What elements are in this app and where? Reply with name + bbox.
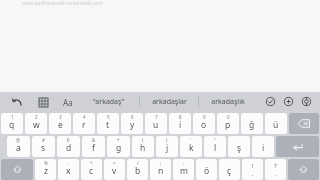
staticText: ( <box>142 137 144 143</box>
staticText: * <box>117 137 120 143</box>
staticText: 1 <box>11 114 14 120</box>
button[interactable]: Shift <box>1 159 33 180</box>
button[interactable]: " <box>204 136 226 157</box>
staticText: e <box>58 119 63 131</box>
staticText: l <box>214 142 217 154</box>
button[interactable]: ü <box>265 113 287 134</box>
button[interactable]: - <box>58 159 79 180</box>
staticText: 4 <box>83 114 86 120</box>
button[interactable]: 1 <box>1 113 23 134</box>
staticText: " <box>214 137 216 143</box>
staticText: j <box>166 142 169 154</box>
button[interactable]: # <box>32 136 55 157</box>
staticText: v <box>112 165 117 177</box>
button[interactable]: 8 <box>169 113 191 134</box>
button[interactable]: 5 <box>97 113 119 134</box>
staticText: 9 <box>203 114 206 120</box>
staticText: d <box>66 142 72 154</box>
button[interactable]: i <box>252 136 274 157</box>
button[interactable]: 4 <box>73 113 95 134</box>
staticText: i <box>262 142 265 154</box>
button[interactable]: + <box>81 159 102 180</box>
button[interactable]: Backspace <box>289 113 319 134</box>
button[interactable]: @ <box>7 136 30 157</box>
staticText: a <box>16 142 21 154</box>
button[interactable]: “arkadaş” <box>77 92 139 111</box>
staticText: www.kadinvekadin-arkadaslik.com <box>22 0 104 7</box>
button[interactable]: % <box>35 159 56 180</box>
staticText: 8 <box>179 114 182 120</box>
staticText: 6 <box>131 114 134 120</box>
button[interactable]: ç <box>219 159 240 180</box>
staticText: k <box>189 142 194 154</box>
button[interactable]: : <box>173 159 194 180</box>
staticText: g <box>116 142 122 154</box>
staticText: . <box>275 170 277 178</box>
button[interactable]: = <box>104 159 125 180</box>
staticText: 0 <box>227 114 230 120</box>
button[interactable]: * <box>107 136 130 157</box>
button[interactable]: Check <box>263 94 278 109</box>
staticText: - <box>68 160 70 166</box>
staticText: t <box>106 119 110 131</box>
button[interactable]: Return <box>276 136 319 157</box>
button[interactable]: ğ <box>241 113 263 134</box>
staticText: ₺ <box>67 137 70 143</box>
staticText: m <box>180 165 188 177</box>
button[interactable]: / <box>127 159 148 180</box>
staticText: & <box>92 137 96 143</box>
staticText: w <box>33 119 40 131</box>
staticText: @ <box>16 137 21 143</box>
button[interactable]: Table <box>35 94 51 110</box>
button[interactable]: ; <box>150 159 171 180</box>
staticText: b <box>135 165 141 177</box>
button[interactable]: 3 <box>49 113 71 134</box>
button[interactable]: Add <box>281 94 296 109</box>
button[interactable]: 0 <box>217 113 239 134</box>
staticText: = <box>113 160 116 166</box>
staticText: ü <box>273 119 279 131</box>
staticText: 7 <box>155 114 158 120</box>
button[interactable]: ş <box>228 136 250 157</box>
staticText: r <box>82 119 86 131</box>
staticText: ğ <box>249 119 255 131</box>
button[interactable]: Undo <box>9 94 25 110</box>
staticText: u <box>153 119 159 131</box>
staticText: Aa <box>63 97 73 108</box>
staticText: ) <box>166 137 168 143</box>
staticText: ' <box>190 137 192 143</box>
staticText: n <box>158 165 164 177</box>
staticText: # <box>42 137 45 143</box>
button[interactable]: ! <box>242 159 263 180</box>
button[interactable]: Settings <box>299 94 314 109</box>
button[interactable]: ( <box>132 136 154 157</box>
button[interactable]: ₺ <box>57 136 80 157</box>
staticText: i <box>179 119 182 131</box>
button[interactable]: 9 <box>193 113 215 134</box>
button[interactable]: ) <box>156 136 178 157</box>
staticText: o <box>201 119 207 131</box>
staticText: y <box>130 119 135 131</box>
staticText: ? <box>274 162 277 170</box>
button[interactable]: ' <box>180 136 202 157</box>
button[interactable]: Text format <box>59 93 77 111</box>
button[interactable]: arkadaşlık <box>199 92 257 111</box>
staticText: h <box>140 142 146 154</box>
button[interactable]: Shift <box>288 159 319 180</box>
button[interactable]: ö <box>196 159 217 180</box>
staticText: “arkadaş” <box>93 97 124 107</box>
button[interactable]: 2 <box>25 113 47 134</box>
button[interactable]: arkadaşlar <box>140 92 198 111</box>
staticText: z <box>44 165 48 177</box>
staticText: ç <box>227 165 232 177</box>
staticText: p <box>225 119 231 131</box>
button[interactable]: & <box>82 136 105 157</box>
staticText: : <box>183 160 185 166</box>
staticText: 3 <box>59 114 62 120</box>
staticText: ö <box>204 165 210 177</box>
staticText: x <box>66 165 71 177</box>
button[interactable]: ? <box>265 159 286 180</box>
staticText: % <box>44 160 48 166</box>
button[interactable]: 6 <box>121 113 143 134</box>
button[interactable]: 7 <box>145 113 167 134</box>
